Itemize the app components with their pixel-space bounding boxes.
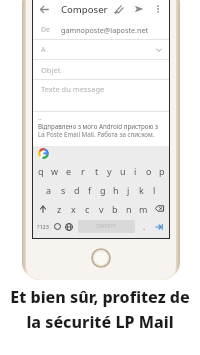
staticText: b [112,203,118,215]
button[interactable]: n [122,199,136,218]
button[interactable]: i [129,161,142,180]
button[interactable]: Shift [34,199,52,218]
staticText: j [127,184,130,196]
staticText: h [113,184,119,196]
button[interactable]: a [42,180,56,199]
button[interactable]: d [70,180,83,199]
staticText: w [51,165,59,177]
staticText: z [57,203,62,215]
staticText: t [95,165,99,177]
button[interactable]: Enter [150,220,167,233]
staticText: . [143,221,146,232]
button[interactable]: t [90,161,103,180]
button[interactable]: Google search [38,148,49,159]
staticText: La Poste Email Mail. Работа за списком. [38,130,155,138]
button[interactable]: j [122,180,135,199]
button[interactable]: p [155,161,168,180]
staticText: p [159,165,165,177]
button[interactable]: More options [149,0,167,18]
button[interactable]: v [94,199,108,218]
staticText: Et bien sûr, profitez de [10,286,190,308]
staticText: x [71,203,76,215]
button[interactable]: g [96,180,109,199]
button[interactable]: r [76,161,90,180]
staticText: QWERTY [96,223,117,230]
button[interactable]: Send [129,0,149,19]
button[interactable]: Change language [63,220,75,233]
button[interactable]: y [103,161,116,180]
button[interactable]: Emoji [51,220,63,233]
button[interactable]: De [33,20,169,39]
button[interactable]: Attach [109,0,129,19]
button[interactable]: l [148,180,161,199]
button[interactable]: f [83,180,96,199]
staticText: v [99,203,104,215]
button[interactable]: m [136,199,150,218]
staticText: d [74,184,80,196]
staticText: ?123 [37,223,49,230]
staticText: l [153,184,156,196]
staticText: Composer [61,3,108,16]
button[interactable]: z [52,199,66,218]
staticText: o [146,165,152,177]
staticText: y [107,165,112,177]
staticText: g [100,184,106,196]
staticText: q [38,165,44,177]
staticText: De [41,25,51,35]
staticText: n [126,203,132,215]
button[interactable]: b [108,199,122,218]
button[interactable]: q [34,161,48,180]
button[interactable]: h [109,180,122,199]
button[interactable]: QWERTY [78,220,135,233]
staticText: m [139,203,148,215]
staticText: f [88,184,92,196]
staticText: Texte du message [41,84,105,94]
button[interactable]: Backspace [150,199,168,218]
button[interactable]: u [116,161,129,180]
button[interactable]: s [56,180,70,199]
button[interactable]: Objet [33,60,169,79]
button[interactable]: o [142,161,155,180]
staticText: Objet [41,65,61,75]
button[interactable]: k [135,180,148,199]
button[interactable]: ?123 [35,220,51,233]
staticText: gamnoposte@laposte.net [61,25,149,35]
button[interactable]: w [48,161,62,180]
staticText: i [134,165,137,177]
staticText: e [66,165,72,177]
staticText: c [85,203,90,215]
button[interactable]: x [66,199,80,218]
button[interactable]: . [138,220,150,233]
staticText: a [46,184,52,196]
staticText: Відправлено з мого Android пристрою з [38,122,158,130]
staticText: A [41,45,46,55]
staticText: r [81,165,85,177]
staticText: -- [38,115,42,122]
button[interactable]: A [33,40,169,59]
staticText: k [139,184,144,196]
staticText: la sécurité LP Mail [26,311,174,333]
button[interactable]: c [80,199,94,218]
button[interactable]: e [62,161,76,180]
staticText: s [61,184,66,196]
staticText: u [120,165,126,177]
button[interactable]: Texte du message [33,80,169,97]
button[interactable]: Back [33,0,55,20]
